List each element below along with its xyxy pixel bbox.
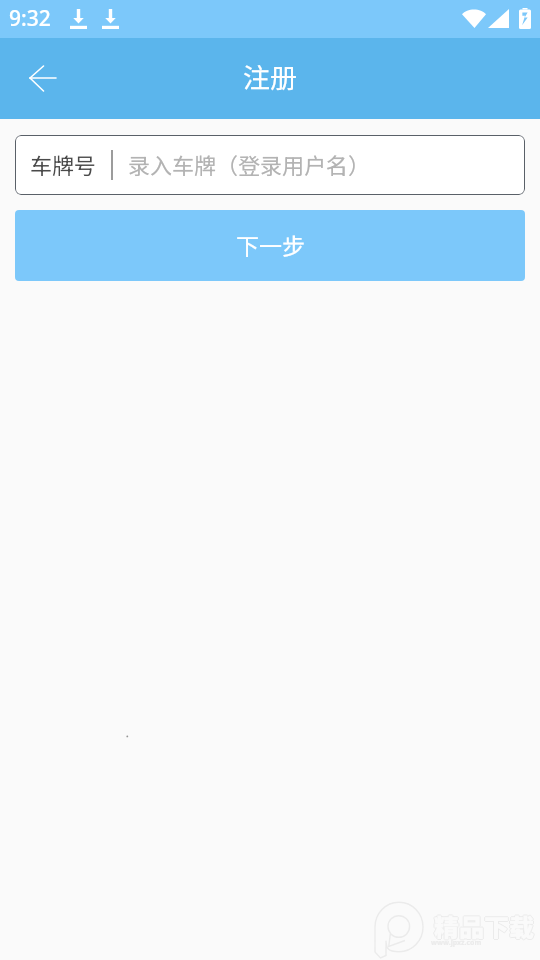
staticText: 精品下载 — [433, 908, 534, 944]
staticText: 注册 — [243, 57, 297, 96]
staticText: 精品下载 — [434, 908, 535, 944]
button[interactable]: Back — [0, 38, 78, 119]
staticText: 录入车牌（登录用户名） — [128, 148, 371, 180]
button[interactable]: 下一步 — [15, 210, 525, 281]
staticText: 精品下载 — [434, 907, 535, 943]
staticText: 车牌号 — [30, 148, 97, 180]
staticText: 下一步 — [236, 228, 305, 261]
button[interactable]: 车牌号 — [15, 135, 525, 195]
staticText: www.jpxz.com — [431, 938, 482, 948]
staticText: 9:32 — [9, 4, 51, 33]
staticText: 精品下载 — [434, 909, 535, 945]
staticText: 精品下载 — [435, 908, 536, 944]
